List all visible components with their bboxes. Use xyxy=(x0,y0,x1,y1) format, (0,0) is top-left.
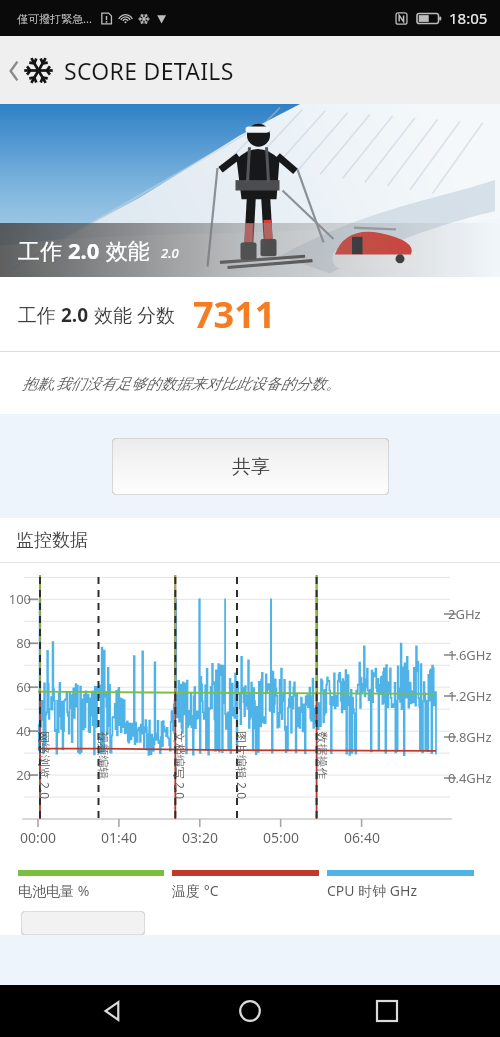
staticText: 1.6GHz xyxy=(448,646,492,664)
staticText: 网络浏览 2.0 xyxy=(37,731,53,827)
staticText: 图片编辑 2.0 xyxy=(234,731,250,827)
staticText: 电池电量 % xyxy=(18,881,90,900)
staticText: 2.0 xyxy=(61,302,89,328)
staticText: 2.0 xyxy=(68,235,100,265)
staticText: 效能 xyxy=(100,235,150,265)
staticText: 视频编辑 xyxy=(95,731,110,827)
staticText: 工作 xyxy=(18,235,68,265)
staticText: 20 xyxy=(1,766,31,784)
button[interactable]: 共享 xyxy=(112,438,389,495)
staticText: 7311 xyxy=(193,290,276,339)
staticText: 05:00 xyxy=(254,828,308,847)
button[interactable]: Recent apps xyxy=(363,987,411,1035)
staticText: 60 xyxy=(1,678,31,696)
staticText: 数据操作 xyxy=(314,731,329,827)
staticText: SCORE DETAILS xyxy=(64,55,234,86)
staticText: 00:00 xyxy=(11,828,65,847)
staticText: 06:40 xyxy=(335,828,389,847)
staticText: 效能 分数 xyxy=(89,302,175,328)
staticText: 僅可撥打緊急... xyxy=(17,11,92,26)
staticText: 2GHz xyxy=(448,605,481,623)
staticText: 18:05 xyxy=(449,8,488,28)
staticText: 2.0 xyxy=(161,244,179,262)
staticText: 工作 xyxy=(18,302,61,328)
staticText: 01:40 xyxy=(92,828,146,847)
staticText: 抱歉,我们没有足够的数据来对比此设备的分数。 xyxy=(22,373,341,393)
staticText: 80 xyxy=(1,634,31,652)
button[interactable]: Back xyxy=(89,987,137,1035)
staticText: 共享 xyxy=(232,455,270,479)
button[interactable]: More options xyxy=(21,911,145,935)
staticText: 文档编写 2.0 xyxy=(172,731,188,827)
staticText: CPU 时钟 GHz xyxy=(327,881,417,900)
staticText: 0.8GHz xyxy=(448,728,492,746)
button[interactable]: Back to score details xyxy=(0,36,500,104)
staticText: 监控数据 xyxy=(16,529,88,552)
staticText: 0.4GHz xyxy=(448,769,492,787)
staticText: 温度 °C xyxy=(172,881,219,900)
staticText: 03:20 xyxy=(173,828,227,847)
staticText: 100 xyxy=(1,590,31,608)
button[interactable]: Home xyxy=(226,987,274,1035)
staticText: 40 xyxy=(1,722,31,740)
staticText: 1.2GHz xyxy=(448,687,492,705)
